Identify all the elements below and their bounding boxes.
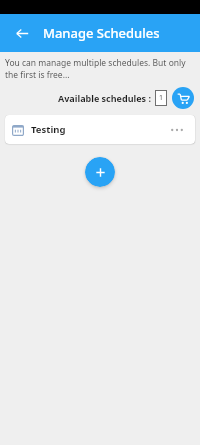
button[interactable]: More options xyxy=(166,119,188,141)
button[interactable]: Testing xyxy=(5,115,195,144)
staticText: Manage Schedules xyxy=(43,24,160,42)
button[interactable]: Add schedule xyxy=(85,157,115,187)
staticText: Available schedules : xyxy=(58,92,151,104)
staticText: 1 xyxy=(159,93,164,103)
staticText: Testing xyxy=(31,123,166,136)
button[interactable]: Back xyxy=(8,19,36,47)
button[interactable]: Buy more schedules xyxy=(172,87,194,109)
staticText: You can manage multiple schedules. But o… xyxy=(5,57,195,81)
